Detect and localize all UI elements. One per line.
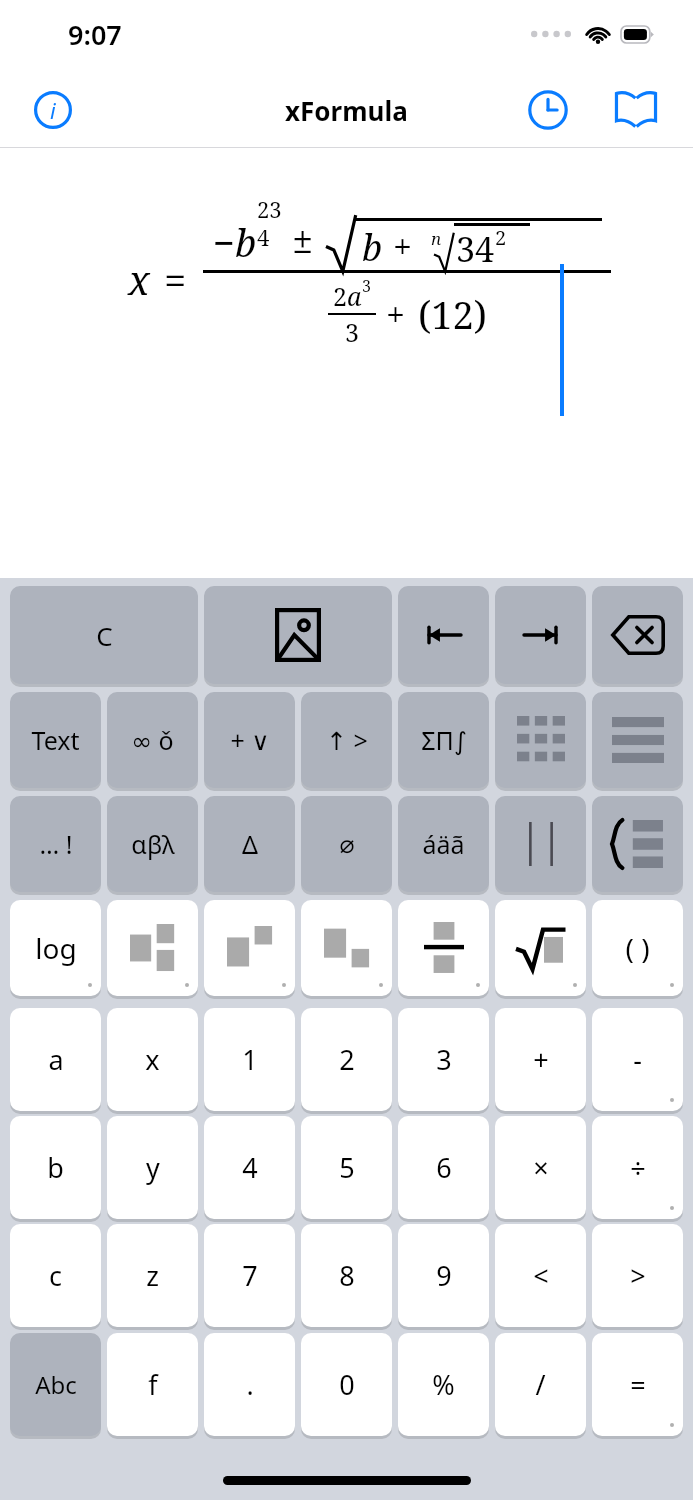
button[interactable]: z <box>107 1224 198 1327</box>
button[interactable]: C <box>10 586 198 684</box>
button[interactable]: - <box>592 1008 683 1111</box>
staticText: 5 <box>339 1149 355 1186</box>
button[interactable]: Equation list <box>592 692 683 788</box>
button[interactable]: áäã <box>398 796 489 892</box>
button[interactable]: ( ) <box>592 900 683 996</box>
button[interactable]: Fraction <box>398 900 489 996</box>
button[interactable]: Cases brace <box>592 796 683 892</box>
staticText: Abc <box>35 1368 77 1401</box>
button[interactable]: ⌀ <box>301 796 392 892</box>
button[interactable]: + <box>495 1008 586 1111</box>
button[interactable]: ↑ > <box>301 692 392 788</box>
button[interactable]: c <box>10 1224 101 1327</box>
staticText: 23 <box>257 194 282 224</box>
button[interactable]: % <box>398 1333 489 1436</box>
staticText: > <box>630 1257 646 1294</box>
button[interactable]: 7 <box>204 1224 295 1327</box>
staticText: % <box>432 1366 455 1403</box>
button[interactable]: 4 <box>204 1116 295 1219</box>
button[interactable]: Library <box>605 79 667 141</box>
button[interactable]: Square root <box>495 900 586 996</box>
button[interactable]: = <box>592 1333 683 1436</box>
button[interactable]: y <box>107 1116 198 1219</box>
staticText: áäã <box>422 827 465 861</box>
button[interactable]: History <box>517 79 579 141</box>
button[interactable]: Subscript <box>301 900 392 996</box>
staticText: x <box>145 1041 160 1078</box>
staticText: y <box>146 1149 160 1186</box>
staticText: Text <box>31 723 80 757</box>
button[interactable]: Text <box>10 692 101 788</box>
staticText: 0 <box>339 1366 355 1403</box>
button[interactable]: Superscript <box>204 900 295 996</box>
staticText: ⌀ <box>339 830 355 859</box>
staticText: ( ) <box>625 929 650 967</box>
button[interactable]: a <box>10 1008 101 1111</box>
button[interactable]: × <box>495 1116 586 1219</box>
button[interactable]: 1 <box>204 1008 295 1111</box>
button[interactable]: + ∨ <box>204 692 295 788</box>
staticText: (12) <box>418 288 487 340</box>
button[interactable]: 2 <box>301 1008 392 1111</box>
button[interactable]: ΣΠ∫ <box>398 692 489 788</box>
staticText: 9:07 <box>68 16 122 53</box>
button[interactable]: ÷ <box>592 1116 683 1219</box>
button[interactable]: 0 <box>301 1333 392 1436</box>
button[interactable]: 3 <box>398 1008 489 1111</box>
staticText: c <box>49 1257 62 1294</box>
staticText: + <box>386 291 406 337</box>
staticText: 2 <box>495 224 507 251</box>
staticText: = <box>164 252 187 306</box>
staticText: 2 <box>339 1041 355 1078</box>
staticText: x <box>128 252 150 306</box>
button[interactable]: / <box>495 1333 586 1436</box>
button[interactable]: Info <box>24 81 82 139</box>
button[interactable]: > <box>592 1224 683 1327</box>
button[interactable]: … ! <box>10 796 101 892</box>
staticText: xFormula <box>285 93 408 128</box>
button[interactable]: Absolute value <box>495 796 586 892</box>
button[interactable]: 6 <box>398 1116 489 1219</box>
button[interactable]: Δ <box>204 796 295 892</box>
button[interactable]: 8 <box>301 1224 392 1327</box>
staticText: b <box>47 1149 64 1186</box>
staticText: ∞ ǒ <box>131 723 174 757</box>
staticText: + <box>393 223 413 269</box>
staticText: . <box>246 1366 254 1403</box>
staticText: + ∨ <box>230 723 270 757</box>
button[interactable]: ∞ ǒ <box>107 692 198 788</box>
staticText: 2a <box>333 279 362 313</box>
staticText: f <box>148 1366 158 1403</box>
staticText: a <box>48 1041 64 1078</box>
button[interactable]: Subscript and superscript <box>107 900 198 996</box>
button[interactable]: log <box>10 900 101 996</box>
staticText: 1 <box>242 1041 258 1078</box>
button[interactable]: . <box>204 1333 295 1436</box>
staticText: 3 <box>362 275 371 297</box>
button[interactable]: 5 <box>301 1116 392 1219</box>
button[interactable]: Backspace <box>592 586 683 684</box>
button[interactable]: αβλ <box>107 796 198 892</box>
staticText: = <box>630 1366 646 1403</box>
button[interactable]: f <box>107 1333 198 1436</box>
staticText: ↑ > <box>326 723 368 757</box>
button[interactable]: < <box>495 1224 586 1327</box>
staticText: −b <box>213 216 257 268</box>
button[interactable]: Insert image <box>204 586 392 684</box>
button[interactable]: x <box>107 1008 198 1111</box>
button[interactable]: Move cursor left <box>398 586 489 684</box>
button[interactable]: 9 <box>398 1224 489 1327</box>
staticText: 4 <box>257 222 270 252</box>
staticText: ΣΠ∫ <box>421 723 467 757</box>
staticText: ± <box>292 212 314 264</box>
staticText: 9 <box>436 1257 452 1294</box>
button[interactable]: Abc <box>10 1333 101 1436</box>
staticText: × <box>533 1149 549 1186</box>
staticText: 4 <box>242 1149 258 1186</box>
button[interactable]: Move cursor right <box>495 586 586 684</box>
button[interactable]: Matrix <box>495 692 586 788</box>
button[interactable]: b <box>10 1116 101 1219</box>
staticText: … ! <box>39 827 73 861</box>
staticText: 6 <box>436 1149 452 1186</box>
staticText: 8 <box>339 1257 355 1294</box>
